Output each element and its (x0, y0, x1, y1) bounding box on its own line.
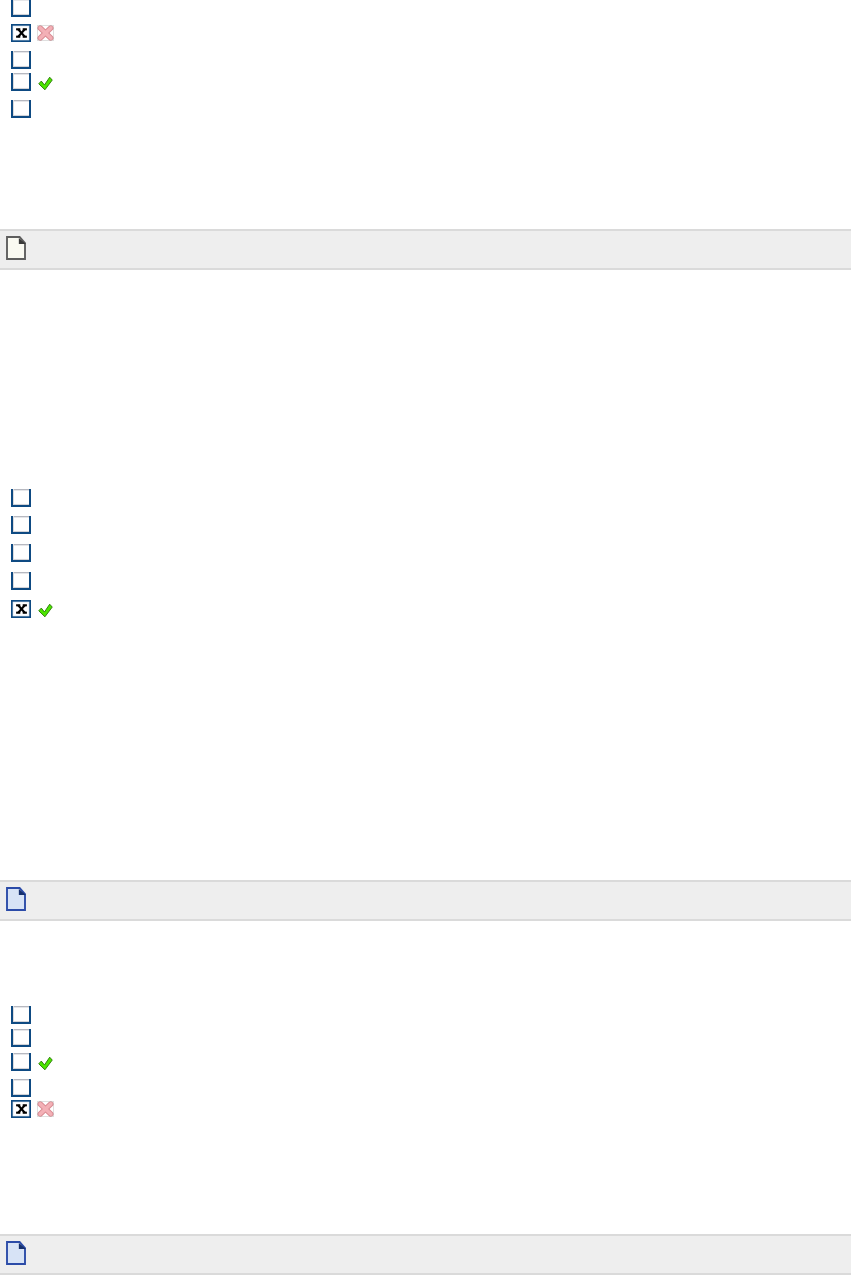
button[interactable]: Question (0, 229, 851, 270)
button[interactable]: Answer option (11, 0, 71, 17)
button[interactable]: Answer option (11, 1053, 71, 1071)
button[interactable]: Question (0, 1234, 851, 1275)
button[interactable]: Question (0, 880, 851, 921)
button[interactable]: Answer option (11, 1006, 71, 1024)
button[interactable]: Answer option (11, 73, 71, 91)
button[interactable]: Answer option (11, 24, 71, 42)
button[interactable]: Answer option (11, 516, 71, 534)
button[interactable]: Answer option (11, 489, 71, 507)
button[interactable]: Answer option (11, 544, 71, 562)
button[interactable]: Answer option (11, 1029, 71, 1047)
button[interactable]: Answer option (11, 100, 71, 118)
button[interactable]: Answer option (11, 1100, 71, 1118)
button[interactable]: Answer option (11, 1079, 71, 1097)
button[interactable]: Answer option (11, 600, 71, 618)
button[interactable]: Answer option (11, 572, 71, 590)
button[interactable]: Answer option (11, 51, 71, 69)
